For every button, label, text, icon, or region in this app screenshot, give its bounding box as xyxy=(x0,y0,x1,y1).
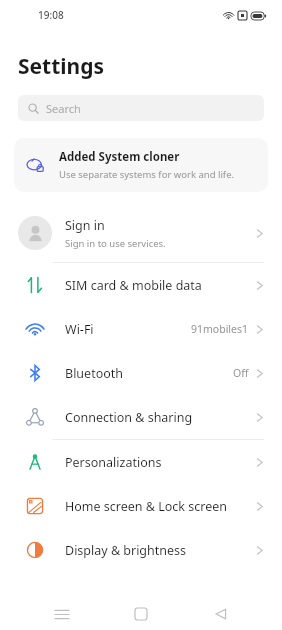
staticText: Use separate systems for work and life. xyxy=(59,168,235,181)
staticText: Wi-Fi xyxy=(65,321,191,338)
staticText: 19:08 xyxy=(38,8,64,22)
staticText: Personalizations xyxy=(65,454,256,471)
staticText: Home screen & Lock screen xyxy=(65,498,256,515)
button[interactable]: Wi-Fi xyxy=(0,307,282,351)
staticText: Search xyxy=(46,101,81,116)
button[interactable]: SIM card & mobile data xyxy=(0,263,282,307)
staticText: Display & brightness xyxy=(65,542,256,559)
button[interactable]: Home xyxy=(123,598,159,630)
button[interactable]: Bluetooth xyxy=(0,351,282,395)
staticText: Added System cloner xyxy=(59,149,180,165)
staticText: 91mobiles1 xyxy=(191,322,249,336)
button[interactable]: Sign in xyxy=(0,204,282,262)
button[interactable]: Personalizations xyxy=(0,440,282,484)
button[interactable]: Home screen & Lock screen xyxy=(0,484,282,528)
button[interactable]: Display & brightness xyxy=(0,528,282,572)
staticText: Off xyxy=(233,366,249,380)
staticText: Sign in to use services. xyxy=(65,237,166,250)
staticText: Bluetooth xyxy=(65,365,233,382)
staticText: Sign in xyxy=(65,217,105,234)
staticText: SIM card & mobile data xyxy=(65,277,256,294)
button[interactable]: Recent apps xyxy=(44,598,80,630)
button[interactable]: Connection & sharing xyxy=(0,395,282,439)
staticText: Settings xyxy=(18,52,105,81)
button[interactable]: Added System cloner xyxy=(14,138,268,192)
staticText: Connection & sharing xyxy=(65,409,256,426)
button[interactable]: Back xyxy=(203,598,239,630)
button[interactable]: Search xyxy=(18,95,264,121)
